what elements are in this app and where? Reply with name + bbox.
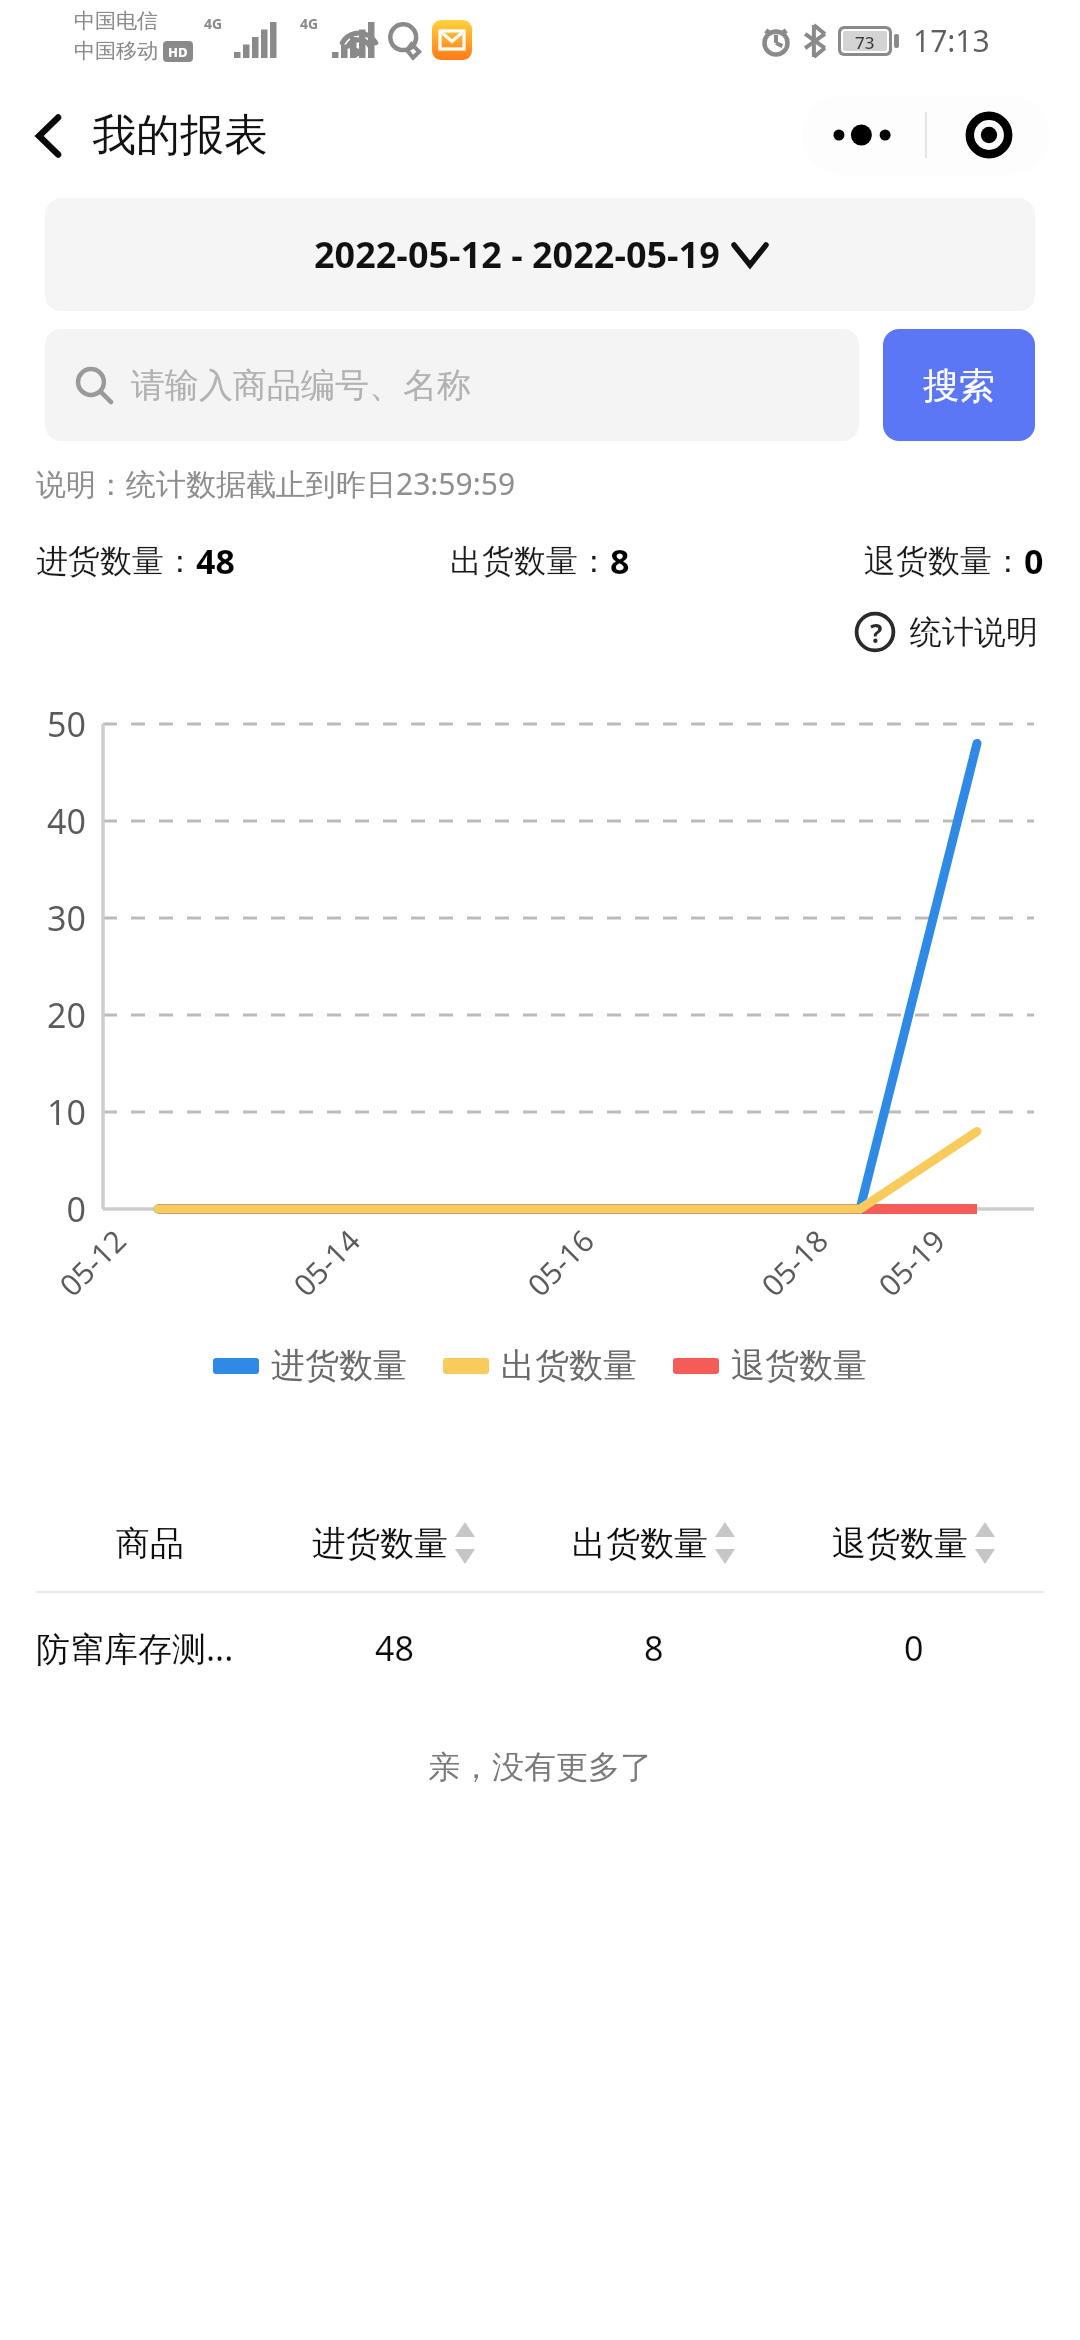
- button[interactable]: Target: [927, 95, 1050, 175]
- staticText: 05-19: [869, 1220, 954, 1305]
- staticText: 8: [644, 1625, 664, 1671]
- staticText: 48: [375, 1625, 414, 1671]
- staticText: 进货数量：: [36, 541, 196, 581]
- button[interactable]: 防窜库存测...: [36, 1593, 1044, 1703]
- staticText: 亲，没有更多了: [428, 1747, 652, 1787]
- staticText: ?: [870, 615, 883, 650]
- staticText: 0: [1024, 538, 1044, 584]
- staticText: 统计说明: [910, 612, 1038, 652]
- staticText: 退货数量: [832, 1522, 968, 1565]
- staticText: 出货数量：: [450, 541, 610, 581]
- staticText: 防窜库存测...: [36, 1625, 234, 1671]
- staticText: 73: [855, 31, 875, 51]
- staticText: 20: [16, 992, 86, 1038]
- staticText: 05-18: [752, 1220, 837, 1305]
- button[interactable]: 进货数量: [213, 1344, 407, 1387]
- staticText: 退货数量：: [864, 541, 1024, 581]
- staticText: 出货数量: [572, 1522, 708, 1565]
- staticText: 中国移动: [74, 38, 158, 64]
- staticText: 05-12: [50, 1220, 135, 1305]
- staticText: 05-14: [284, 1220, 369, 1305]
- staticText: 我的报表: [92, 108, 268, 163]
- button[interactable]: ?: [849, 606, 1044, 658]
- staticText: HD: [168, 43, 188, 61]
- staticText: 0: [904, 1625, 924, 1671]
- button[interactable]: 退货数量: [784, 1514, 1044, 1572]
- button[interactable]: Back: [30, 98, 274, 173]
- staticText: 中国电信: [74, 8, 158, 34]
- staticText: 2022-05-12 - 2022-05-19: [314, 230, 720, 279]
- button[interactable]: 出货数量: [524, 1514, 784, 1572]
- button[interactable]: 进货数量: [264, 1514, 524, 1572]
- staticText: 10: [16, 1089, 86, 1135]
- staticText: 商品: [116, 1522, 184, 1565]
- staticText: 进货数量: [312, 1522, 448, 1565]
- staticText: 搜索: [923, 363, 995, 408]
- button[interactable]: 请输入商品编号、名称: [45, 329, 859, 441]
- staticText: 0: [16, 1186, 86, 1232]
- button[interactable]: 退货数量: [673, 1344, 867, 1387]
- button[interactable]: More: [802, 95, 925, 175]
- staticText: 4G: [300, 14, 319, 33]
- staticText: 退货数量: [731, 1344, 867, 1387]
- staticText: 请输入商品编号、名称: [131, 364, 471, 407]
- staticText: 48: [196, 538, 235, 584]
- staticText: 05-16: [518, 1220, 603, 1305]
- staticText: 出货数量: [501, 1344, 637, 1387]
- staticText: 40: [16, 798, 86, 844]
- staticText: 50: [16, 701, 86, 747]
- button[interactable]: 出货数量: [443, 1344, 637, 1387]
- button[interactable]: 搜索: [883, 329, 1035, 441]
- staticText: 说明：统计数据截止到昨日23:59:59: [36, 463, 516, 504]
- staticText: 进货数量: [271, 1344, 407, 1387]
- button[interactable]: 2022-05-12 - 2022-05-19: [45, 198, 1035, 311]
- staticText: 30: [16, 895, 86, 941]
- staticText: 4G: [204, 14, 223, 33]
- staticText: 17:13: [913, 20, 990, 61]
- other: Back: [36, 114, 62, 158]
- staticText: 8: [610, 538, 630, 584]
